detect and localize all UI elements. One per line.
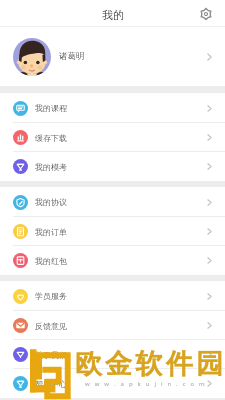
staticText: 我的订单 (35, 227, 67, 237)
button[interactable]: Settings (196, 4, 216, 24)
button[interactable]: 我的模考 (0, 152, 225, 181)
staticText: 缓存下载 (35, 133, 67, 143)
staticText: 关于我们 (35, 350, 67, 360)
staticText: 我的课程 (35, 103, 67, 113)
button[interactable]: 我的协议 (0, 187, 225, 217)
staticText: 欧金软件园 (73, 347, 225, 381)
button[interactable]: 反馈意见 (0, 311, 225, 340)
staticText: 诸葛明 (59, 51, 85, 62)
staticText: w w w . a p k u j i n . c o m (85, 380, 207, 388)
staticText: 我的协议 (35, 197, 67, 207)
button[interactable]: 我的红包 (0, 246, 225, 275)
button[interactable]: 我的订单 (0, 217, 225, 246)
button[interactable]: 学员服务 (0, 281, 225, 311)
button[interactable]: 关于我们 (0, 340, 225, 369)
staticText: 我的模考 (35, 162, 67, 172)
button[interactable]: 帮助中心 (0, 369, 225, 398)
button[interactable]: 诸葛明 (0, 27, 225, 86)
button[interactable]: 缓存下载 (0, 123, 225, 152)
staticText: 反馈意见 (35, 321, 67, 331)
staticText: 帮助中心 (35, 379, 67, 389)
button[interactable]: 我的课程 (0, 93, 225, 123)
staticText: 学员服务 (35, 291, 67, 301)
staticText: 我的 (102, 8, 124, 22)
staticText: 我的红包 (35, 256, 67, 266)
